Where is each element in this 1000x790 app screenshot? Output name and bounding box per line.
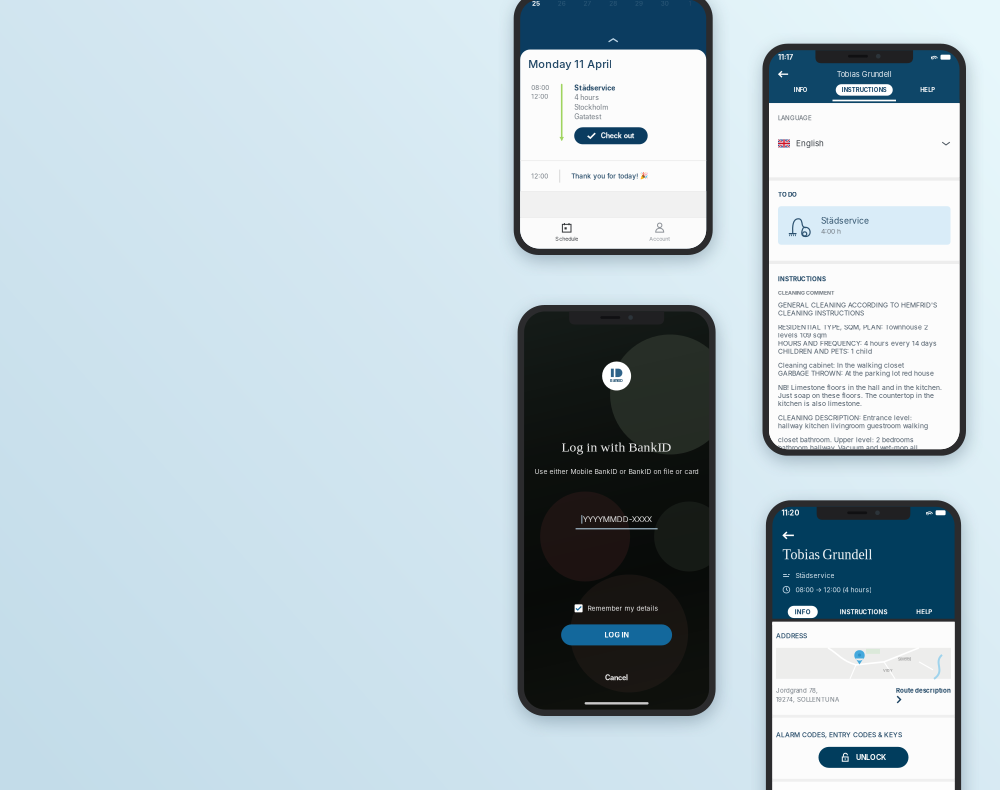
staticText: Sollered	[898, 657, 911, 661]
staticText: HELP	[916, 608, 932, 616]
staticText: Route description	[896, 687, 951, 694]
staticText: INFO	[795, 608, 811, 616]
button[interactable]: INFO	[772, 606, 833, 618]
staticText: GENERAL CLEANING ACCORDING TO HEMFRID'S …	[778, 301, 937, 317]
staticText: TO DO	[778, 191, 797, 198]
staticText: LANGUAGE	[778, 114, 812, 122]
staticText: 27	[583, 0, 591, 7]
staticText: YYYYMMDD-XXXX	[583, 515, 652, 524]
staticText: Tobias Grundell	[782, 547, 872, 562]
staticText: Städservice	[574, 84, 615, 92]
staticText: 19274, SOLLENTUNA	[776, 696, 839, 703]
staticText: ALARM CODES, ENTRY CODES & KEYS	[776, 731, 902, 739]
button[interactable]: Schedule	[520, 222, 613, 242]
staticText: Schedule	[555, 235, 578, 242]
button[interactable]: INSTRUCTIONS	[832, 84, 896, 96]
button[interactable]: Back	[782, 531, 795, 540]
staticText: HELP	[920, 86, 935, 93]
staticText: English	[796, 139, 824, 148]
button[interactable]: Check out	[574, 127, 648, 144]
staticText: Städservice	[821, 215, 869, 226]
staticText: Monday 11 April	[528, 57, 612, 71]
button[interactable]: English	[778, 139, 950, 148]
staticText: 29	[635, 0, 643, 7]
staticText: Remember my details	[588, 604, 659, 612]
button[interactable]: LOG IN	[561, 624, 672, 645]
staticText: BankID	[610, 378, 623, 383]
staticText: CLEANING COMMENT	[778, 290, 834, 296]
staticText: 12:00	[531, 92, 548, 100]
staticText: 12:00	[531, 172, 548, 180]
button[interactable]: HELP	[896, 86, 959, 93]
staticText: INSTRUCTIONS	[842, 86, 887, 93]
staticText: RESIDENTIAL TYPE, SQM, PLAN: Townhouse 2…	[778, 323, 937, 355]
staticText: closet bathroom. Upper level: 2 bedrooms…	[778, 436, 918, 460]
staticText: 4 hours	[574, 93, 599, 102]
staticText: CLEANING DESCRIPTION: Entrance level: ha…	[778, 414, 928, 430]
button[interactable]: Back	[778, 70, 789, 78]
staticText: Cleaning cabinet: In the walking closet …	[778, 361, 934, 377]
button[interactable]: INSTRUCTIONS	[833, 608, 894, 616]
staticText: Gatatest	[574, 112, 601, 121]
staticText: INSTRUCTIONS	[778, 275, 826, 283]
button[interactable]: UNLOCK	[818, 747, 908, 768]
staticText: ADDRESS	[776, 632, 807, 640]
staticText: NB! Limestone floors in the hall and in …	[778, 383, 942, 408]
staticText: Cancel	[605, 673, 628, 682]
staticText: UNLOCK	[856, 753, 886, 762]
staticText: Use either Mobile BankID or BankID on fi…	[535, 467, 699, 475]
button[interactable]: Cancel	[605, 673, 628, 682]
staticText: 25	[532, 0, 540, 7]
staticText: INFO	[794, 86, 808, 93]
staticText: 08:00	[531, 84, 549, 91]
staticText: Tobias Grundell	[837, 70, 892, 79]
staticText: 11:17	[778, 53, 793, 61]
staticText: 11:20	[781, 508, 799, 517]
staticText: LOG IN	[605, 630, 629, 639]
button[interactable]: Account	[613, 222, 706, 242]
button[interactable]: HELP	[894, 608, 955, 616]
button[interactable]: Route description	[896, 687, 951, 704]
staticText: Stockholm	[574, 103, 608, 111]
staticText: 4:00 h	[821, 227, 841, 235]
staticText: Thank you for today! 🎉	[571, 172, 648, 180]
staticText: VIBY	[883, 668, 893, 673]
staticText: 1	[689, 0, 692, 7]
staticText: 28	[609, 0, 617, 7]
staticText: 30	[661, 0, 669, 7]
staticText: Log in with BankID	[562, 439, 672, 454]
staticText: 08:00 → 12:00 (4 hours)	[795, 586, 871, 594]
staticText: 26	[558, 0, 566, 7]
staticText: Städservice	[795, 571, 834, 580]
button[interactable]: INFO	[769, 86, 832, 93]
staticText: Jordgränd 78,	[776, 687, 818, 694]
staticText: Check out	[601, 131, 635, 140]
staticText: INSTRUCTIONS	[839, 608, 887, 616]
staticText: Account	[649, 235, 670, 242]
